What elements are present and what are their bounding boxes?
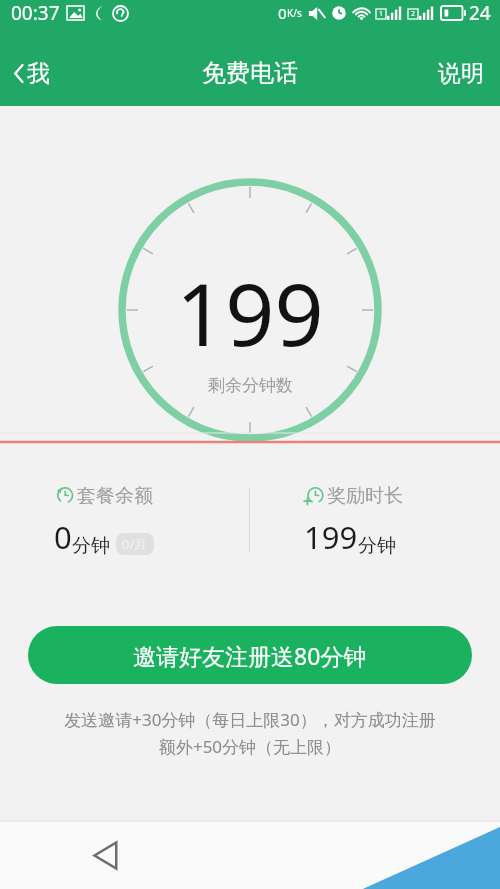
staticText: 我 [27,59,50,88]
staticText: 剩余分钟数 [208,375,293,396]
button[interactable]: 说明 [422,47,500,100]
button[interactable]: 套餐余额 [0,468,249,568]
staticText: 199 [176,254,324,371]
staticText: 免费电话 [202,58,298,88]
button[interactable]: Back [82,832,128,878]
staticText: 发送邀请+30分钟（每日上限30），对方成功注册 额外+50分钟（无上限） [16,708,484,758]
staticText: 2 [411,9,416,19]
other: 奖励时长 [304,486,324,506]
staticText: 分钟 [358,534,396,558]
staticText: 分钟 [72,534,110,558]
staticText: K/s [287,6,302,20]
staticText: 00:37 [11,0,60,26]
staticText: 邀请好友注册送80分钟 [133,640,367,671]
button[interactable]: 邀请好友注册送80分钟 [28,626,472,684]
staticText: 24 [469,0,491,26]
staticText: 1 [379,9,384,19]
button[interactable]: 我 [0,49,66,98]
staticText: 套餐余额 [77,484,153,508]
staticText: 说明 [438,59,484,88]
staticText: 0/月 [122,535,148,553]
other: 套餐余额 [54,486,74,506]
button[interactable]: 奖励时长 [250,468,500,568]
staticText: 0 [54,516,72,558]
staticText: 0 [278,3,287,23]
staticText: 奖励时长 [327,484,403,508]
staticText: 199 [304,516,358,558]
